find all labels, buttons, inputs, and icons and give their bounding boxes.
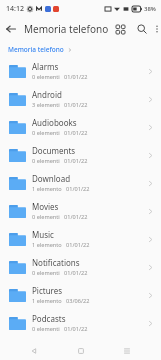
staticText: 01/01/22 (64, 73, 88, 81)
button[interactable]: Back (22, 342, 46, 360)
staticText: Alarms (32, 61, 59, 72)
staticText: 0 elementi (32, 129, 60, 137)
staticText: 01/01/22 (64, 101, 88, 109)
button[interactable]: Search (131, 18, 153, 40)
button[interactable]: Alarms (0, 57, 161, 85)
staticText: 0 elementi (32, 73, 60, 81)
staticText: 0 elementi (32, 213, 60, 221)
staticText: 1 elemento (32, 297, 62, 305)
button[interactable]: Android (0, 85, 161, 113)
staticText: Notifications (32, 257, 80, 268)
staticText: 01/01/22 (64, 269, 88, 277)
staticText: 0 elementi (32, 325, 60, 333)
staticText: 01/01/22 (64, 213, 88, 221)
button[interactable]: Recent apps (115, 342, 139, 360)
button[interactable]: Movies (0, 197, 161, 225)
staticText: 01/01/22 (64, 129, 88, 137)
staticText: Memoria telefono (8, 45, 64, 54)
button[interactable]: More options (153, 18, 161, 40)
staticText: Android (32, 89, 62, 100)
button[interactable]: Back (0, 18, 22, 40)
staticText: Audiobooks (32, 117, 77, 128)
staticText: 01/01/22 (64, 325, 88, 333)
button[interactable]: Pictures (0, 281, 161, 309)
staticText: Download (32, 173, 71, 184)
button[interactable]: Download (0, 169, 161, 197)
staticText: 3 elementi (32, 101, 60, 109)
staticText: Documents (32, 145, 76, 156)
staticText: Movies (32, 201, 59, 212)
button[interactable]: Music (0, 225, 161, 253)
staticText: 01/01/22 (66, 185, 90, 193)
staticText: Music (32, 229, 54, 240)
button[interactable]: Documents (0, 141, 161, 169)
button[interactable]: Home (69, 342, 93, 360)
staticText: 03/06/22 (66, 297, 90, 305)
button[interactable]: Notifications (0, 253, 161, 281)
button[interactable]: Grid view (109, 18, 131, 40)
staticText: Podcasts (32, 313, 66, 324)
staticText: 0 elementi (32, 269, 60, 277)
staticText: 01/01/22 (64, 157, 88, 165)
button[interactable]: Podcasts (0, 309, 161, 337)
staticText: 0 elementi (32, 157, 60, 165)
button[interactable]: Memoria telefono (8, 45, 72, 54)
staticText: Pictures (32, 285, 63, 296)
staticText: Memoria telefono (24, 22, 109, 36)
staticText: 1 elemento (32, 185, 62, 193)
staticText: 38% (144, 5, 156, 13)
staticText: 14:12 (6, 4, 24, 14)
button[interactable]: Audiobooks (0, 113, 161, 141)
staticText: 01/01/22 (66, 241, 90, 249)
staticText: 1 elemento (32, 241, 62, 249)
